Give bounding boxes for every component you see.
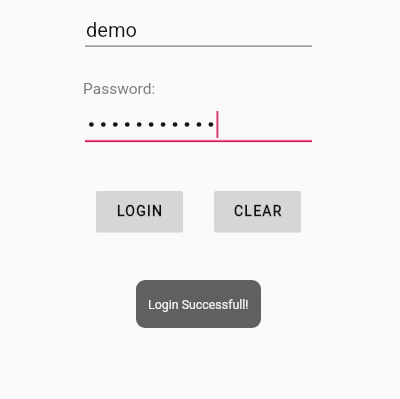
button[interactable]: demo (86, 18, 137, 41)
button[interactable] (84, 108, 316, 146)
staticText: Password: (83, 80, 156, 98)
button[interactable]: CLEAR (214, 190, 301, 232)
staticText: LOGIN (117, 203, 164, 219)
staticText: CLEAR (234, 203, 283, 219)
staticText: Login Successfull! (148, 297, 249, 312)
button[interactable]: LOGIN (96, 190, 183, 232)
